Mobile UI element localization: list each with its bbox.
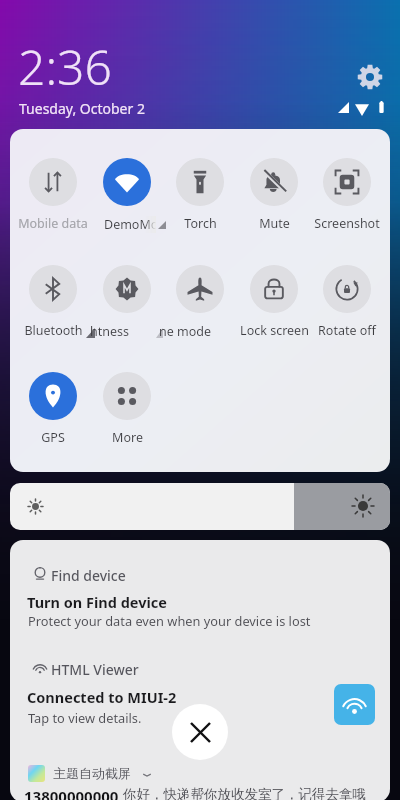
button[interactable]: Bluetooth: [16, 265, 90, 335]
staticText: Connected to MIUI-2: [27, 687, 177, 707]
staticText: Lock screen: [240, 322, 309, 339]
staticText: HTML Viewer: [51, 660, 139, 679]
staticText: htness: [90, 323, 129, 340]
button[interactable]: Brightness slider: [10, 483, 390, 530]
staticText: Protect your data even when your device …: [28, 612, 311, 629]
staticText: Mute: [259, 215, 290, 232]
button[interactable]: 主题自动截屏: [10, 758, 390, 800]
staticText: Find device: [51, 566, 126, 585]
staticText: Tuesday, October 2: [19, 99, 145, 118]
button[interactable]: Mobile data: [16, 158, 90, 228]
button[interactable]: Rotate off: [310, 265, 384, 335]
staticText: Bluetooth: [24, 322, 83, 339]
button[interactable]: GPS: [16, 372, 90, 442]
button[interactable]: Settings: [357, 64, 383, 90]
staticText: Torch: [184, 215, 217, 232]
staticText: 你好，快递帮你放收发室了，记得去拿哦: [123, 786, 366, 800]
staticText: Rotate off: [318, 322, 376, 339]
staticText: More: [112, 429, 143, 446]
staticText: Screenshot: [314, 215, 380, 232]
button[interactable]: Find device: [10, 556, 390, 628]
staticText: Tap to view details.: [28, 709, 142, 726]
staticText: Mobile data: [18, 215, 88, 232]
staticText: Turn on Find device: [27, 592, 167, 612]
staticText: DemoMode: [104, 216, 156, 233]
button[interactable]: More: [90, 372, 164, 442]
button[interactable]: Lock screen: [237, 265, 311, 335]
staticText: 2:36: [18, 34, 112, 99]
button[interactable]: HTML Viewer: [10, 650, 390, 726]
button[interactable]: Torch: [163, 158, 237, 228]
staticText: GPS: [41, 429, 65, 446]
staticText: 主题自动截屏: [53, 765, 131, 781]
button[interactable]: Wi-Fi: [334, 684, 375, 725]
button[interactable]: [90, 158, 164, 228]
button[interactable]: Screenshot: [310, 158, 384, 228]
staticText: ne mode: [159, 323, 212, 340]
staticText: 13800000000: [24, 786, 119, 800]
button[interactable]: [90, 265, 164, 335]
button[interactable]: Mute: [237, 158, 311, 228]
button[interactable]: Clear all notifications: [172, 704, 228, 760]
button[interactable]: [163, 265, 237, 335]
